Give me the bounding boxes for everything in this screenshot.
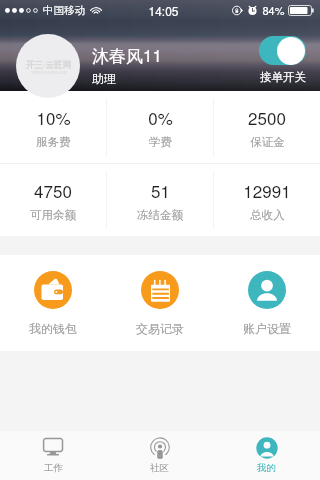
staticText: 中国移动 — [43, 4, 85, 17]
staticText: 我的 — [257, 462, 276, 474]
button[interactable]: 账户设置 — [213, 255, 320, 351]
staticText: 我的钱包 — [29, 321, 77, 336]
button[interactable]: 12991 — [214, 164, 320, 236]
button[interactable]: 0% — [107, 91, 213, 163]
button[interactable]: 2500 — [214, 91, 320, 163]
button[interactable]: 10% — [0, 91, 106, 163]
button[interactable]: 工作 — [0, 431, 106, 480]
staticText: 14:05 — [148, 2, 179, 19]
staticText: 总收入 — [250, 208, 285, 222]
staticText: 10% — [36, 105, 71, 129]
button[interactable]: 我的 — [213, 431, 320, 480]
staticText: 开三·云匠网 — [26, 58, 71, 70]
staticText: 0% — [148, 105, 173, 129]
staticText: 账户设置 — [243, 321, 291, 336]
button[interactable]: 51 — [107, 164, 213, 236]
button[interactable]: 交易记录 — [106, 255, 213, 351]
staticText: 84% — [262, 2, 285, 18]
staticText: 可用余额 — [30, 208, 76, 222]
staticText: 保证金 — [250, 135, 285, 149]
staticText: 51 — [151, 178, 170, 202]
staticText: 2500 — [248, 105, 286, 129]
staticText: WWW.KAIJIANG.COM — [31, 70, 67, 75]
staticText: 沐春风11 — [92, 42, 162, 67]
staticText: 交易记录 — [136, 321, 184, 336]
staticText: 工作 — [44, 462, 63, 474]
staticText: 12991 — [243, 178, 291, 202]
staticText: 社区 — [150, 462, 169, 474]
staticText: 助理 — [92, 71, 116, 86]
button[interactable]: 我的钱包 — [0, 255, 106, 351]
staticText: 服务费 — [36, 135, 71, 149]
button[interactable]: 接单开关 — [259, 36, 306, 65]
button[interactable]: 4750 — [0, 164, 106, 236]
staticText: 接单开关 — [260, 70, 306, 84]
staticText: 4750 — [34, 178, 72, 202]
staticText: 学费 — [149, 135, 172, 149]
staticText: 冻结金额 — [137, 208, 183, 222]
button[interactable]: 社区 — [106, 431, 213, 480]
